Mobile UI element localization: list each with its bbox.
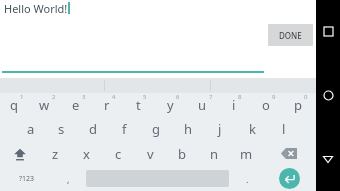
- button[interactable]: Enter: [262, 166, 316, 191]
- staticText: o: [262, 96, 270, 114]
- staticText: g: [152, 120, 160, 138]
- staticText: x: [83, 145, 90, 163]
- button[interactable]: y: [156, 93, 188, 117]
- staticText: a: [27, 120, 35, 138]
- staticText: ?123: [19, 174, 35, 184]
- staticText: b: [178, 145, 186, 163]
- button[interactable]: t: [124, 93, 156, 117]
- button[interactable]: p: [284, 93, 316, 117]
- staticText: l: [282, 120, 286, 138]
- button[interactable]: g: [140, 117, 172, 141]
- staticText: 4: [112, 93, 116, 101]
- button[interactable]: r: [93, 93, 124, 117]
- staticText: t: [136, 96, 141, 114]
- staticText: 9: [272, 93, 276, 101]
- staticText: k: [249, 120, 256, 138]
- staticText: h: [184, 120, 193, 138]
- button[interactable]: e: [62, 93, 93, 117]
- staticText: n: [210, 145, 219, 163]
- staticText: r: [104, 96, 110, 114]
- button[interactable]: z: [40, 141, 71, 166]
- staticText: s: [58, 120, 65, 138]
- button[interactable]: j: [204, 117, 236, 141]
- staticText: .: [246, 173, 249, 185]
- button[interactable]: Recents: [316, 0, 340, 63]
- button[interactable]: Backspace: [262, 141, 316, 166]
- staticText: c: [115, 145, 122, 163]
- button[interactable]: Back: [316, 127, 340, 191]
- button[interactable]: k: [236, 117, 268, 141]
- staticText: m: [240, 145, 253, 163]
- staticText: y: [167, 96, 174, 114]
- staticText: w: [39, 96, 50, 114]
- staticText: ,: [67, 173, 70, 185]
- staticText: z: [52, 145, 59, 163]
- button[interactable]: f: [108, 117, 140, 141]
- button[interactable]: q: [0, 93, 31, 117]
- staticText: d: [89, 120, 97, 138]
- button[interactable]: .: [232, 166, 262, 191]
- staticText: j: [218, 120, 222, 138]
- staticText: DONE: [279, 30, 302, 41]
- button[interactable]: w: [31, 93, 62, 117]
- button[interactable]: c: [102, 141, 134, 166]
- button[interactable]: b: [166, 141, 198, 166]
- button[interactable]: x: [71, 141, 102, 166]
- staticText: 0: [304, 93, 308, 101]
- button[interactable]: Shift: [0, 141, 40, 166]
- button[interactable]: ?123: [0, 166, 53, 191]
- staticText: i: [232, 96, 236, 114]
- staticText: 6: [176, 93, 180, 101]
- button[interactable]: i: [220, 93, 252, 117]
- staticText: 2: [52, 93, 56, 101]
- staticText: p: [294, 96, 302, 114]
- button[interactable]: m: [230, 141, 262, 166]
- button[interactable]: Home: [316, 63, 340, 127]
- staticText: 3: [82, 93, 86, 101]
- button[interactable]: v: [134, 141, 166, 166]
- staticText: v: [147, 145, 154, 163]
- staticText: e: [72, 96, 80, 114]
- button[interactable]: DONE: [268, 24, 313, 46]
- button[interactable]: d: [77, 117, 108, 141]
- staticText: 5: [143, 93, 147, 101]
- staticText: u: [198, 96, 207, 114]
- staticText: 1: [20, 93, 24, 101]
- button[interactable]: s: [46, 117, 77, 141]
- button[interactable]: o: [252, 93, 284, 117]
- button[interactable]: h: [172, 117, 204, 141]
- staticText: 8: [238, 93, 242, 101]
- button[interactable]: l: [268, 117, 300, 141]
- button[interactable]: n: [198, 141, 230, 166]
- staticText: 7: [209, 93, 213, 101]
- button[interactable]: u: [188, 93, 220, 117]
- button[interactable]: a: [15, 117, 46, 141]
- staticText: q: [10, 96, 18, 114]
- staticText: f: [122, 120, 127, 138]
- staticText: Hello World!: [4, 1, 68, 16]
- button[interactable]: ,: [53, 166, 83, 191]
